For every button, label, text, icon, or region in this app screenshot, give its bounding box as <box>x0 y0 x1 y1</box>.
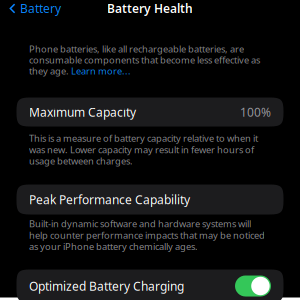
staticText: This is a measure of battery capacity re… <box>29 132 258 167</box>
staticText: they age. <box>29 65 71 77</box>
staticText: Built-in dynamic software and hardware s… <box>29 217 265 253</box>
staticText: Battery Health <box>107 0 193 16</box>
staticText: consumable components that become less e… <box>29 54 260 66</box>
button[interactable]: Optimized Battery Charging <box>16 269 283 300</box>
staticText: Battery <box>20 0 61 16</box>
staticText: Peak Performance Capability <box>29 191 190 207</box>
staticText: 100% <box>240 104 271 120</box>
button[interactable]: Maximum Capacity <box>16 97 283 126</box>
staticText: Learn more... <box>71 65 131 77</box>
staticText: Maximum Capacity <box>29 104 136 120</box>
staticText: Phone batteries, like all rechargeable b… <box>29 43 244 55</box>
button[interactable]: Battery <box>0 0 61 16</box>
button[interactable]: Peak Performance Capability <box>16 184 283 214</box>
staticText: Optimized Battery Charging <box>29 278 184 294</box>
button[interactable]: Learn more... <box>71 65 131 77</box>
